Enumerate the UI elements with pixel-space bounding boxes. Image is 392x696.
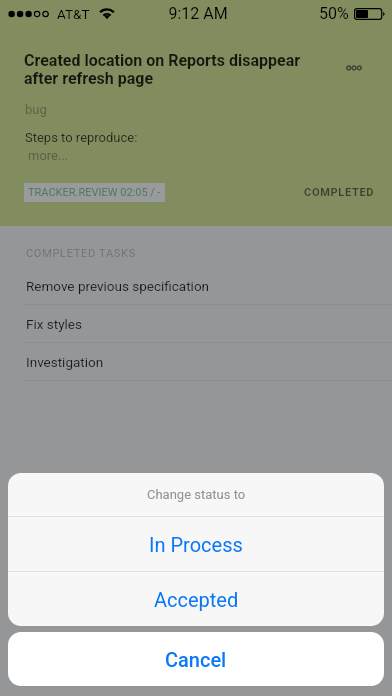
button[interactable]: Fix styles [0, 305, 392, 343]
button[interactable]: Cancel [8, 632, 384, 686]
staticText: Investigation [26, 354, 104, 370]
staticText: Cancel [165, 648, 227, 671]
staticText: COMPLETED [304, 186, 375, 199]
staticText: In Process [149, 533, 243, 556]
staticText: more... [28, 148, 69, 163]
button[interactable]: More options [334, 48, 374, 88]
staticText: COMPLETED TASKS [26, 247, 136, 260]
button[interactable]: Remove previous specification [0, 267, 392, 305]
button[interactable]: Accepted [8, 572, 384, 626]
staticText: Steps to reproduce: [25, 130, 138, 145]
staticText: Remove previous specification [26, 278, 210, 294]
button[interactable]: Investigation [0, 343, 392, 381]
button[interactable]: TRACKER.REVIEW 02:05 / - [28, 183, 161, 202]
staticText: Created location on Reports disappear af… [24, 51, 316, 88]
button[interactable]: In Process [8, 517, 384, 571]
staticText: 9:12 AM [168, 4, 228, 23]
staticText: TRACKER.REVIEW 02:05 / - [28, 186, 161, 199]
staticText: AT&T [57, 6, 90, 22]
staticText: bug [25, 102, 47, 117]
staticText: 50% [319, 4, 349, 23]
staticText: Change status to [147, 487, 246, 502]
staticText: Accepted [154, 588, 239, 611]
staticText: Fix styles [26, 316, 82, 332]
